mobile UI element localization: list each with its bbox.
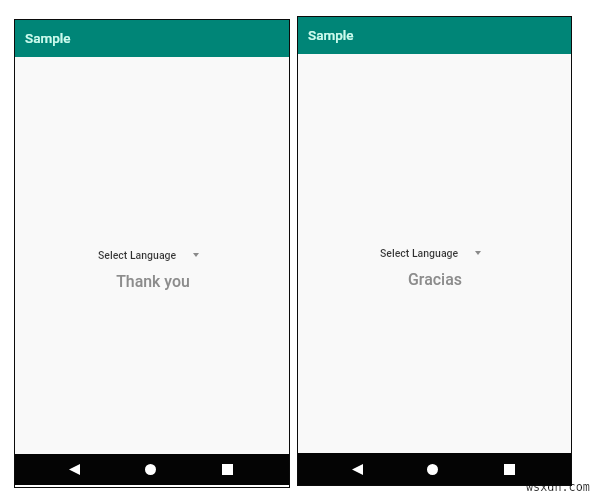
staticText: Sample <box>25 30 71 46</box>
button[interactable]: Home <box>140 459 161 480</box>
staticText: Gracias <box>408 270 462 289</box>
staticText: Sample <box>308 27 354 43</box>
button[interactable]: Home <box>422 459 443 480</box>
button[interactable]: Recent apps <box>217 459 238 480</box>
button[interactable]: Back <box>64 459 85 480</box>
staticText: Select Language <box>98 249 177 261</box>
button[interactable]: Recent apps <box>499 459 520 480</box>
button[interactable]: Select Language <box>98 249 199 261</box>
staticText: Select Language <box>380 247 459 259</box>
staticText: Thank you <box>116 272 190 291</box>
staticText: wsxdn.com <box>526 480 590 494</box>
button[interactable]: Back <box>347 459 368 480</box>
button[interactable]: Select Language <box>380 247 481 259</box>
